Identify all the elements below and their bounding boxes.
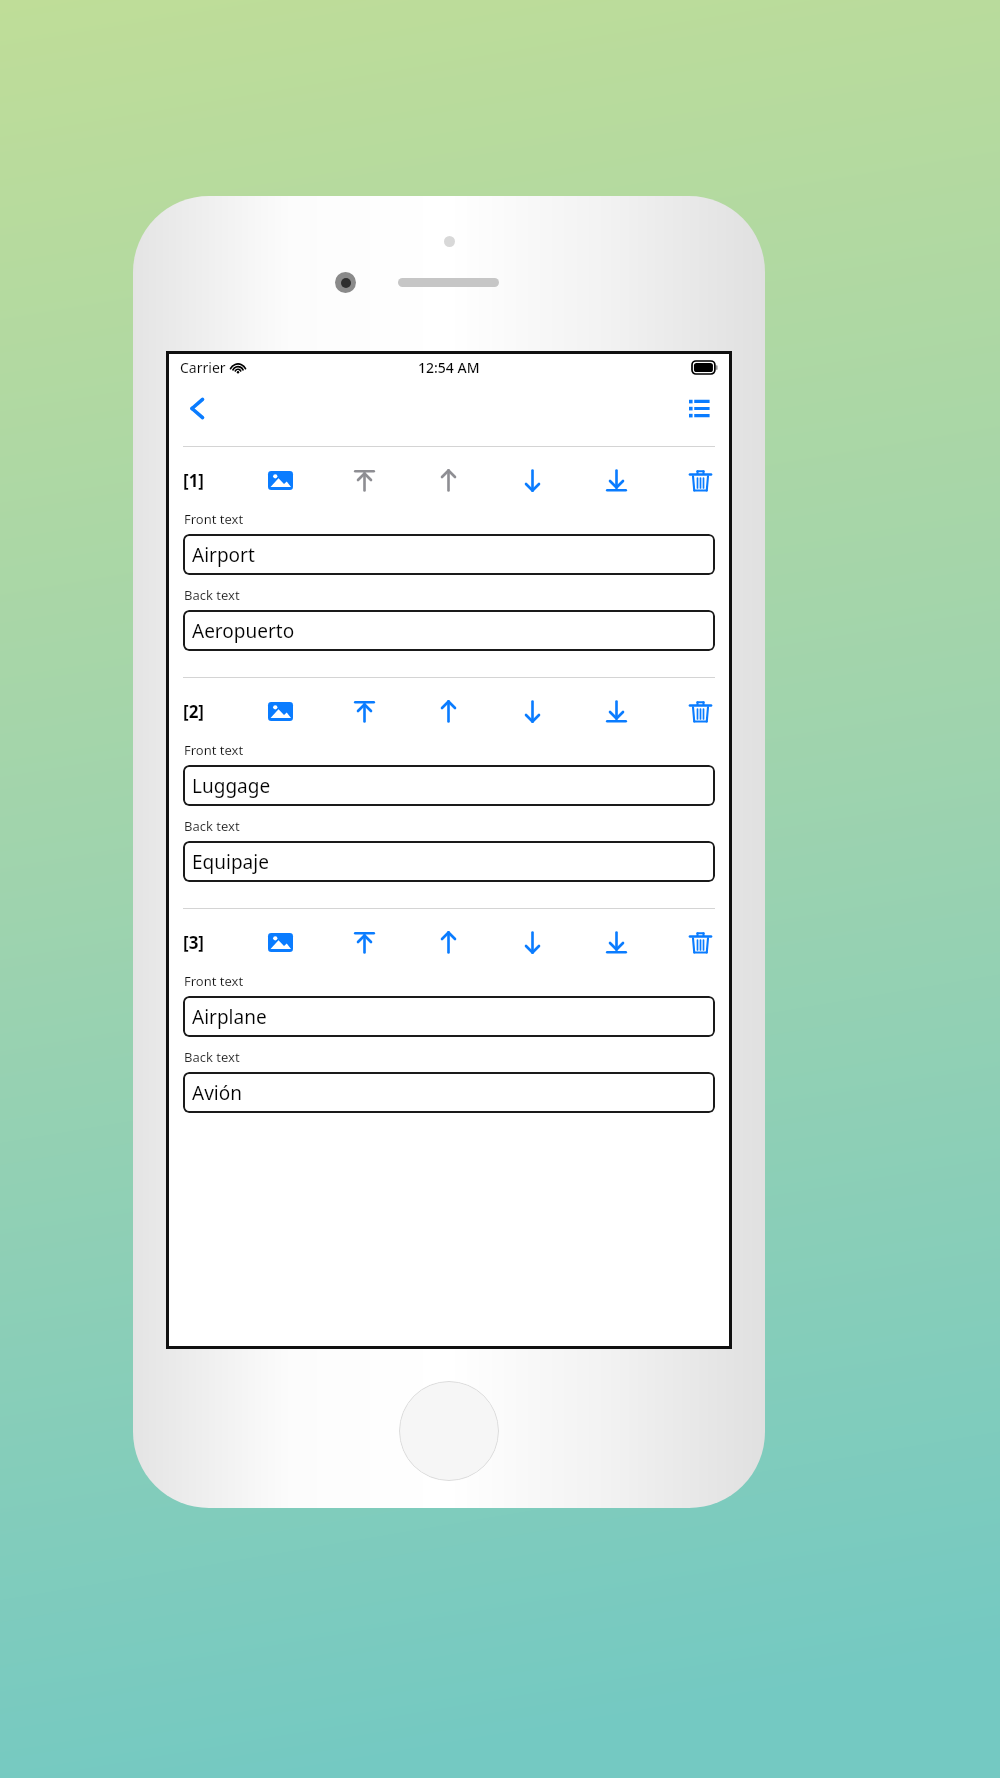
button[interactable]: Move down — [515, 694, 549, 728]
button[interactable]: Move to bottom — [599, 463, 633, 497]
button[interactable]: Move to top — [347, 463, 381, 497]
staticText: Front text — [184, 972, 244, 990]
button[interactable]: List options — [675, 385, 721, 431]
staticText: Avión — [192, 1080, 242, 1106]
staticText: Equipaje — [192, 849, 269, 875]
button[interactable]: Move to top — [347, 694, 381, 728]
staticText: [2] — [183, 700, 204, 723]
button[interactable]: Move up — [431, 694, 465, 728]
button[interactable]: Avión — [183, 1072, 715, 1113]
button[interactable]: Move to top — [347, 925, 381, 959]
button[interactable]: Delete — [683, 694, 717, 728]
button[interactable]: Image — [263, 925, 297, 959]
staticText: [1] — [183, 469, 204, 492]
button[interactable]: Airplane — [183, 996, 715, 1037]
staticText: Back text — [184, 586, 240, 604]
staticText: Back text — [184, 817, 240, 835]
staticText: [3] — [183, 931, 204, 954]
staticText: Luggage — [192, 773, 271, 799]
button[interactable]: Image — [263, 463, 297, 497]
staticText: 12:54 AM — [418, 358, 480, 377]
button[interactable]: Move down — [515, 463, 549, 497]
staticText: Airport — [192, 542, 255, 568]
button[interactable]: Move down — [515, 925, 549, 959]
button[interactable]: Equipaje — [183, 841, 715, 882]
staticText: Front text — [184, 741, 244, 759]
staticText: Airplane — [192, 1004, 267, 1030]
staticText: Aeropuerto — [192, 618, 295, 644]
button[interactable]: Airport — [183, 534, 715, 575]
button[interactable]: Back — [174, 385, 220, 431]
button[interactable]: Aeropuerto — [183, 610, 715, 651]
staticText: Front text — [184, 510, 244, 528]
button[interactable]: Luggage — [183, 765, 715, 806]
button[interactable]: Delete — [683, 925, 717, 959]
button[interactable]: Delete — [683, 463, 717, 497]
button[interactable]: Move to bottom — [599, 694, 633, 728]
button[interactable]: Image — [263, 694, 297, 728]
button[interactable]: Move up — [431, 463, 465, 497]
staticText: Carrier — [180, 358, 226, 377]
button[interactable]: Move to bottom — [599, 925, 633, 959]
staticText: Back text — [184, 1048, 240, 1066]
button[interactable]: Move up — [431, 925, 465, 959]
